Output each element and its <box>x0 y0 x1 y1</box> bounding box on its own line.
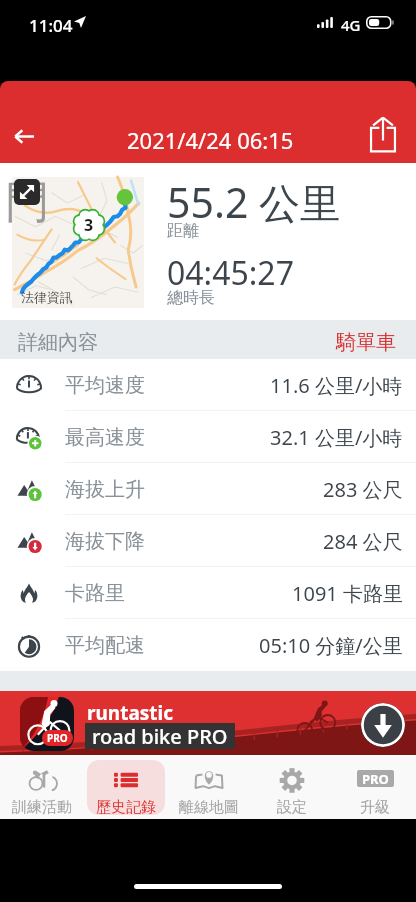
button[interactable]: 離線地圖 <box>170 760 248 815</box>
staticText: 總時長 <box>167 288 215 308</box>
button[interactable]: Map <box>12 177 144 308</box>
button[interactable]: 卡路里 <box>0 567 416 619</box>
button[interactable]: 歷史記錄 <box>87 760 165 815</box>
staticText: 海拔上升 <box>65 477 145 502</box>
button[interactable]: 海拔下降 <box>0 515 416 567</box>
button[interactable]: Expand map <box>14 179 40 205</box>
staticText: 歷史記錄 <box>96 798 156 815</box>
button[interactable]: 最高速度 <box>0 411 416 463</box>
button[interactable]: Share <box>361 112 405 156</box>
staticText: 門 <box>5 175 49 230</box>
staticText: 283 公尺 <box>323 476 403 503</box>
staticText: 平均配速 <box>65 633 145 658</box>
staticText: 1091 卡路里 <box>292 580 403 607</box>
staticText: 284 公尺 <box>323 528 403 555</box>
staticText: 55.2 公里 <box>167 174 342 230</box>
staticText: 海拔下降 <box>65 529 145 554</box>
staticText: 4G <box>341 15 361 35</box>
staticText: PRO <box>47 731 68 745</box>
button[interactable]: PRO <box>0 691 416 755</box>
staticText: 32.1 公里/小時 <box>270 424 403 451</box>
staticText: 11.6 公里/小時 <box>270 372 403 399</box>
button[interactable]: 平均速度 <box>0 359 416 411</box>
staticText: 升級 <box>360 798 390 815</box>
staticText: 詳細內容 <box>18 330 98 355</box>
button[interactable]: PRO <box>336 760 414 815</box>
staticText: 04:45:27 <box>167 251 294 295</box>
staticText: 平均速度 <box>65 373 145 398</box>
staticText: 設定 <box>277 798 307 815</box>
button[interactable]: 平均配速 <box>0 619 416 671</box>
staticText: 05:10 分鐘/公里 <box>259 632 403 659</box>
staticText: 訓練活動 <box>12 798 72 815</box>
staticText: 最高速度 <box>65 425 145 450</box>
button[interactable]: 訓練活動 <box>3 760 81 815</box>
staticText: 3 <box>84 214 94 236</box>
button[interactable]: Download <box>361 703 405 747</box>
staticText: 11:04 <box>29 14 73 37</box>
staticText: 距離 <box>167 221 199 241</box>
staticText: 法律資訊 <box>21 289 73 305</box>
button[interactable]: Back <box>2 114 46 158</box>
button[interactable]: 設定 <box>253 760 331 815</box>
staticText: 騎單車 <box>336 330 396 355</box>
staticText: 離線地圖 <box>179 798 239 815</box>
staticText: PRO <box>362 770 389 787</box>
staticText: road bike PRO <box>92 723 228 749</box>
button[interactable]: 海拔上升 <box>0 463 416 515</box>
staticText: runtastic <box>87 700 174 726</box>
staticText: 2021/4/24 06:15 <box>127 125 294 155</box>
staticText: 卡路里 <box>65 581 125 606</box>
